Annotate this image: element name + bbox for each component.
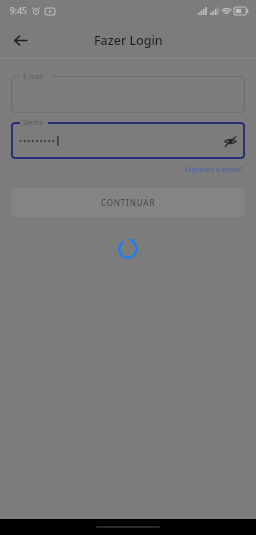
button[interactable]: Senha — [11, 122, 245, 159]
button[interactable]: E-mail — [11, 76, 245, 113]
button[interactable]: CONTINUAR — [11, 188, 245, 217]
staticText: CONTINUAR — [101, 197, 156, 208]
button[interactable]: Esqueceu a senha? — [183, 163, 245, 176]
button[interactable]: Toggle password visibility — [221, 132, 239, 150]
staticText: Senha — [23, 118, 44, 128]
other: Loading — [115, 236, 141, 262]
staticText: E-mail — [23, 72, 44, 82]
staticText: Fazer Login — [94, 32, 163, 49]
button[interactable]: Back — [6, 26, 34, 54]
staticText: 9:45 — [10, 5, 27, 17]
